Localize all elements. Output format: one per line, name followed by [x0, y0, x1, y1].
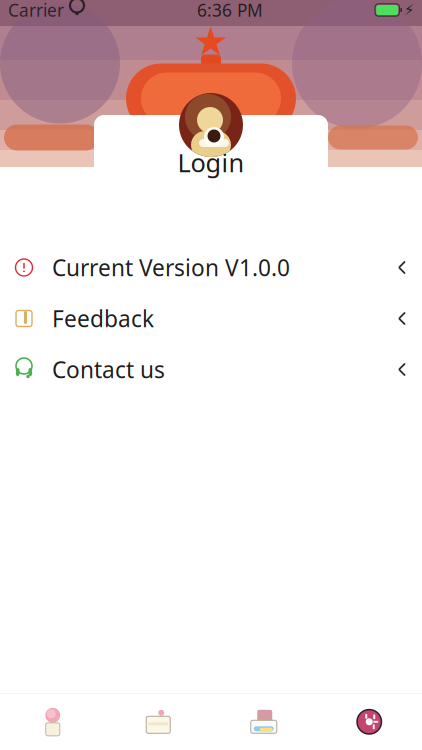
button[interactable]: Current Version V1.0.0 — [0, 242, 422, 293]
staticText: Current Version V1.0.0 — [52, 252, 290, 282]
staticText: Feedback — [52, 303, 154, 333]
button[interactable]: Pastries — [211, 697, 316, 747]
button[interactable]: Cakes — [105, 697, 211, 747]
button[interactable]: Login — [94, 115, 328, 210]
button[interactable]: Donuts — [316, 697, 422, 747]
staticText: 6:36 PM — [197, 0, 263, 21]
staticText: ★ — [193, 19, 229, 64]
button[interactable]: Contact us — [0, 344, 422, 395]
staticText: Carrier — [8, 0, 64, 21]
staticText: Login — [177, 146, 244, 179]
staticText: Contact us — [52, 354, 165, 384]
staticText: ⚡︎ — [404, 2, 414, 18]
button[interactable]: Ice Cream — [0, 697, 105, 747]
button[interactable]: Feedback — [0, 293, 422, 344]
